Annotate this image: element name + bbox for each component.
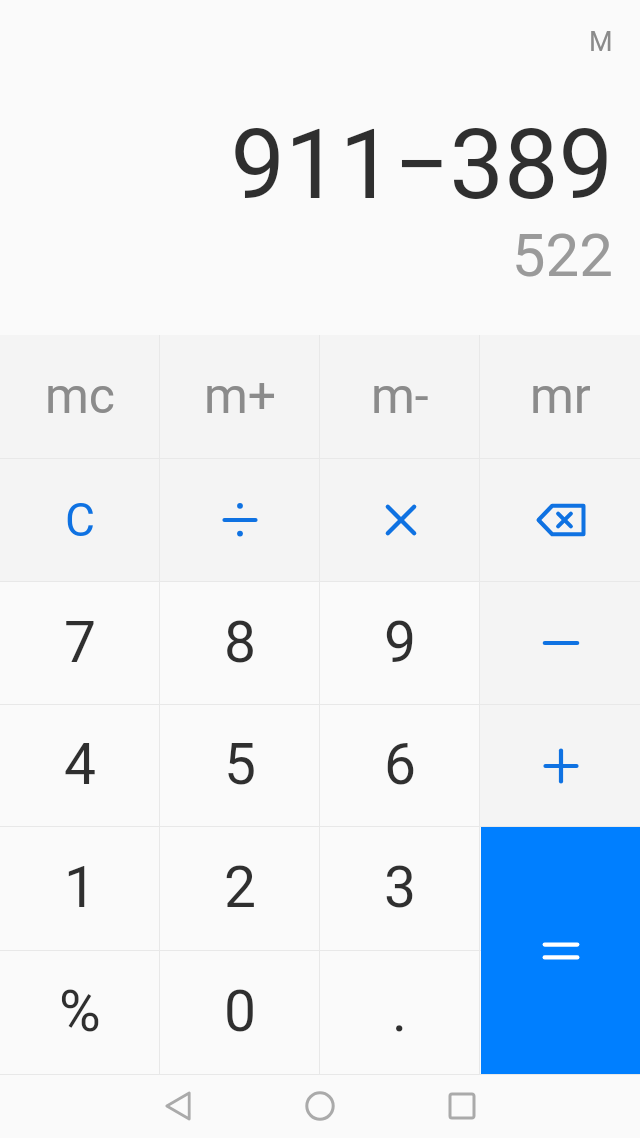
staticText: 911−389 [230,108,613,222]
staticText: 8 [224,609,257,676]
staticText: 3 [384,854,417,921]
button[interactable]: m- [320,335,480,458]
staticText: 2 [224,854,257,921]
button[interactable]: Plus [480,705,640,826]
staticText: m- [371,367,429,426]
button[interactable]: Back [145,1075,209,1138]
staticText: 7 [64,609,97,676]
staticText: . [392,978,408,1045]
staticText: 6 [384,731,417,798]
button[interactable]: 7 [0,582,160,704]
button[interactable]: 1 [0,827,160,950]
button[interactable]: 6 [320,705,480,826]
button[interactable]: Divide [160,459,320,581]
button[interactable]: 4 [0,705,160,826]
staticText: mr [530,367,591,426]
button[interactable]: 3 [320,827,480,950]
staticText: mc [45,367,116,426]
staticText: C [65,493,95,547]
button[interactable]: . [320,951,480,1074]
staticText: 4 [64,731,97,798]
staticText: 9 [384,609,417,676]
staticText: % [59,978,101,1045]
staticText: 0 [224,978,257,1045]
button[interactable]: 0 [160,951,320,1074]
button[interactable]: 2 [160,827,320,950]
button[interactable]: C [0,459,160,581]
button[interactable]: 9 [320,582,480,704]
button[interactable]: Recents [430,1075,494,1138]
staticText: 1 [64,854,97,921]
button[interactable]: mr [480,335,640,458]
staticText: 5 [224,731,257,798]
button[interactable]: 5 [160,705,320,826]
button[interactable]: % [0,951,160,1074]
button[interactable]: 8 [160,582,320,704]
staticText: 522 [511,220,613,290]
staticText: M [589,26,613,58]
button[interactable]: Multiply [320,459,480,581]
button[interactable]: Equals [481,827,640,1074]
staticText: m+ [204,367,277,426]
button[interactable]: Home [288,1075,352,1138]
button[interactable]: Backspace [480,459,640,581]
button[interactable]: mc [0,335,160,458]
button[interactable]: Minus [480,582,640,704]
button[interactable]: m+ [160,335,320,458]
